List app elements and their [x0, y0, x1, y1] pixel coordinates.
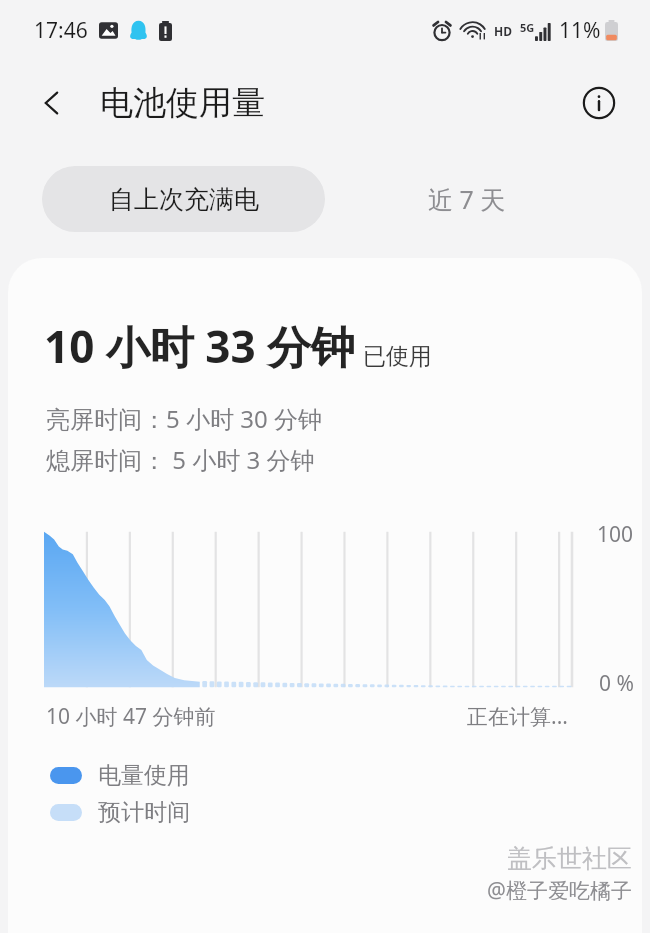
staticText: 0 %: [599, 669, 634, 698]
staticText: @橙子爱吃橘子: [487, 876, 632, 905]
staticText: HD: [494, 23, 512, 39]
staticText: 5G: [520, 20, 535, 35]
staticText: 100: [597, 520, 634, 549]
staticText: 盖乐世社区: [507, 843, 632, 874]
button[interactable]: Information: [572, 76, 626, 130]
staticText: 17:46: [34, 16, 88, 45]
staticText: 10 小时 33 分钟: [44, 316, 355, 376]
staticText: 自上次充满电: [109, 184, 259, 215]
staticText: 电量使用: [98, 761, 190, 790]
staticText: 亮屏时间：5 小时 30 分钟: [46, 402, 322, 435]
staticText: 已使用: [363, 342, 432, 371]
staticText: 10 小时 47 分钟前: [46, 702, 216, 731]
button[interactable]: 自上次充满电: [42, 166, 325, 232]
staticText: 近 7 天: [428, 182, 506, 216]
staticText: 电池使用量: [100, 82, 265, 124]
staticText: 正在计算...: [467, 702, 568, 731]
staticText: 预计时间: [98, 798, 190, 827]
button[interactable]: 近 7 天: [325, 166, 608, 232]
staticText: 熄屏时间： 5 小时 3 分钟: [46, 443, 315, 476]
staticText: 11%: [559, 16, 601, 45]
button[interactable]: Back: [24, 75, 80, 131]
